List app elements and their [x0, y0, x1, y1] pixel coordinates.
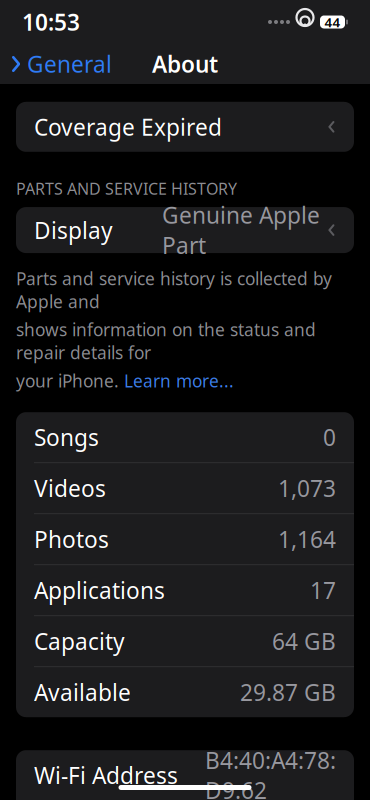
staticText: 29.87 GB: [240, 677, 336, 707]
button[interactable]: Display: [16, 207, 354, 253]
staticText: 0: [323, 422, 336, 452]
staticText: your iPhone.: [16, 369, 124, 392]
staticText: 1,073: [278, 473, 336, 503]
staticText: Display: [34, 215, 113, 245]
button[interactable]: General: [0, 43, 112, 85]
staticText: Videos: [34, 473, 106, 503]
staticText: B4:40:A4:78:D9:63: [156, 796, 336, 800]
staticText: General: [27, 49, 112, 79]
staticText: About: [152, 49, 218, 79]
staticText: Wi-Fi Address: [34, 760, 178, 790]
staticText: 44: [324, 13, 340, 31]
staticText: PARTS AND SERVICE HISTORY: [16, 178, 237, 199]
staticText: Photos: [34, 524, 109, 554]
staticText: Available: [34, 677, 131, 707]
staticText: 10:53: [22, 7, 80, 37]
staticText: Applications: [34, 575, 165, 605]
button[interactable]: Coverage Expired: [16, 102, 354, 152]
staticText: Coverage Expired: [34, 112, 222, 142]
staticText: Genuine Apple Part: [162, 200, 320, 260]
staticText: Serial Number: [34, 17, 122, 77]
staticText: shows information on the status and repa…: [16, 318, 316, 364]
staticText: 64 GB: [272, 626, 336, 656]
staticText: B4:40:A4:78:D9:62: [205, 745, 336, 800]
staticText: Learn more...: [124, 369, 234, 392]
button[interactable]: Learn more...: [124, 369, 234, 392]
staticText: Songs: [34, 422, 99, 452]
staticText: C7CCQA4KN72K: [166, 32, 336, 62]
staticText: 1,164: [278, 524, 336, 554]
staticText: Capacity: [34, 626, 125, 656]
staticText: Parts and service history is collected b…: [16, 267, 332, 313]
staticText: 17: [310, 575, 336, 605]
